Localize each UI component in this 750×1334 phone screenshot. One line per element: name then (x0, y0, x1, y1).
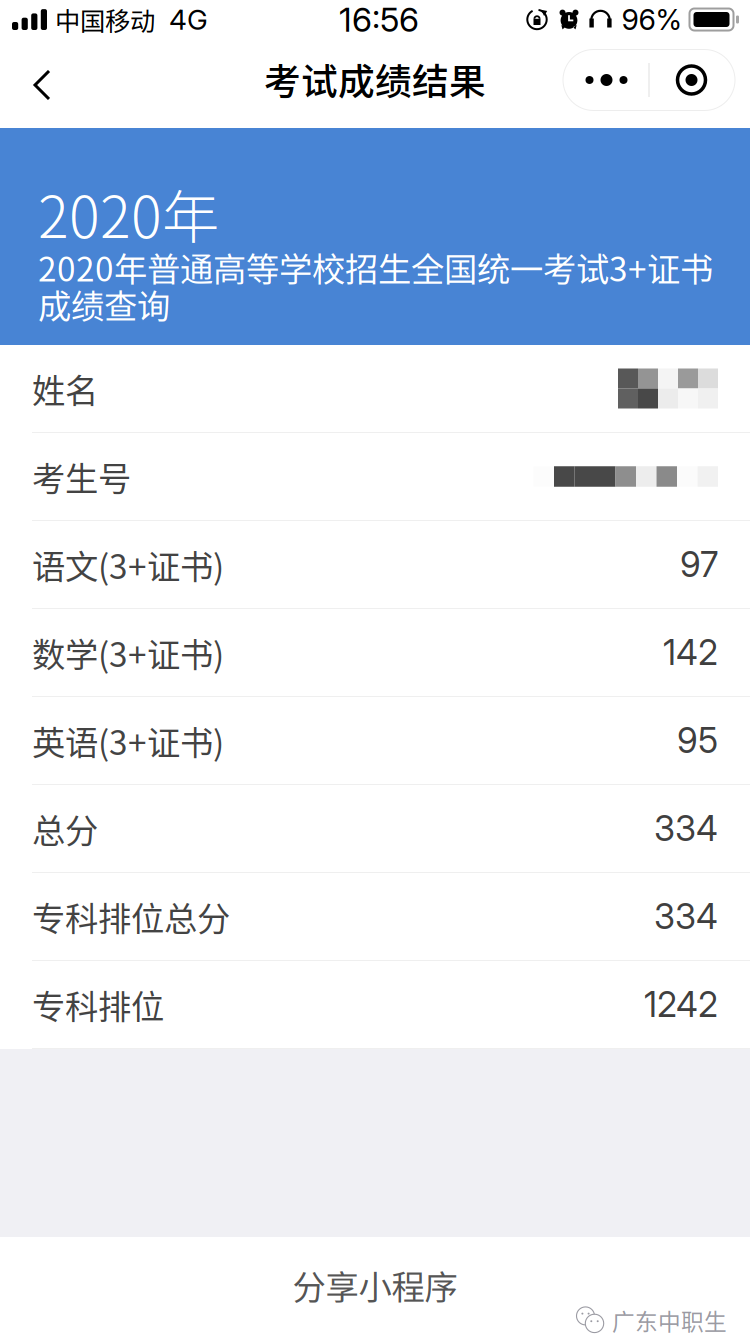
staticText: 96% (621, 2, 681, 37)
button[interactable]: Back (0, 48, 84, 122)
staticText: 142 (663, 631, 718, 673)
staticText: 1242 (644, 983, 718, 1025)
staticText: 语文(3+证书) (32, 540, 224, 589)
staticText: 97 (680, 543, 718, 585)
staticText: 广东中职生 (612, 1304, 727, 1334)
staticText: 总分 (32, 804, 98, 853)
staticText: 2020年普通高等学校招生全国统一考试3+证书 (38, 243, 713, 291)
button[interactable]: Close (649, 51, 733, 109)
staticText: 16:56 (339, 0, 419, 40)
staticText: 2020年 (38, 171, 219, 254)
staticText: 334 (654, 807, 718, 849)
staticText: 专科排位 (32, 980, 164, 1029)
staticText: 考生号 (32, 452, 131, 501)
staticText: 4G (169, 3, 208, 36)
staticText: 成绩查询 (38, 280, 170, 328)
staticText: 数学(3+证书) (32, 628, 224, 677)
staticText: 姓名 (32, 364, 98, 413)
staticText: 专科排位总分 (32, 892, 230, 941)
button[interactable]: More (564, 51, 648, 109)
staticText: 95 (677, 719, 718, 761)
staticText: 中国移动 (55, 1, 155, 38)
staticText: 考试成绩结果 (264, 52, 486, 106)
button[interactable]: 分享小程序 (0, 1266, 750, 1304)
staticText: 英语(3+证书) (32, 716, 224, 765)
staticText: 334 (654, 895, 718, 937)
staticText: 分享小程序 (292, 1261, 457, 1309)
